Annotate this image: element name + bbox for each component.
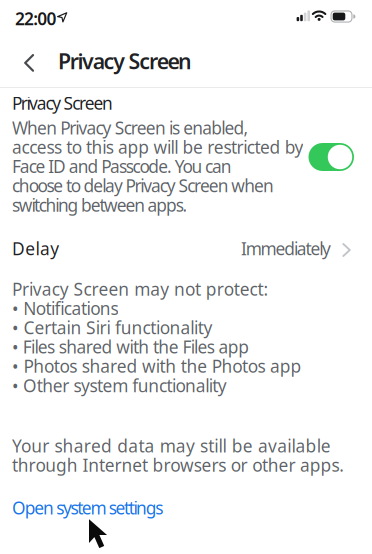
staticText: Open system settings [12, 496, 163, 519]
staticText: • Files shared with the Files app [12, 335, 249, 358]
staticText: Privacy Screen [12, 91, 113, 114]
staticText: • Certain Siri functionality [12, 316, 213, 339]
staticText: Delay [12, 237, 59, 260]
staticText: choose to delay Privacy Screen when [12, 174, 274, 197]
staticText: Privacy Screen [58, 47, 192, 75]
staticText: Immediately [241, 237, 331, 260]
staticText: 22:00 [15, 7, 56, 30]
staticText: through Internet browsers or other apps. [12, 453, 344, 476]
button[interactable]: Privacy Screen [308, 143, 354, 171]
button[interactable]: Delay [0, 232, 372, 268]
staticText: • Other system functionality [12, 374, 227, 397]
staticText: Your shared data may still be available [12, 434, 331, 457]
staticText: • Photos shared with the Photos app [12, 355, 301, 378]
staticText: When Privacy Screen is enabled, [12, 116, 248, 139]
staticText: Face ID and Passcode. You can [12, 155, 232, 178]
staticText: access to this app will be restricted by [12, 135, 303, 158]
staticText: switching between apps. [12, 193, 187, 216]
button[interactable]: Open system settings [12, 496, 163, 519]
button[interactable]: Back [6, 40, 50, 84]
staticText: • Notifications [12, 297, 118, 320]
staticText: Privacy Screen may not protect: [12, 277, 268, 300]
